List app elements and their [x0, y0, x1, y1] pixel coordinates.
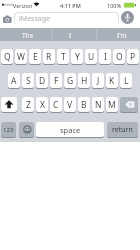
- button[interactable]: [14, 12, 119, 25]
- staticText: I: [69, 31, 72, 40]
- button[interactable]: X: [36, 97, 48, 112]
- staticText: E: [33, 51, 38, 63]
- staticText: I: [104, 51, 107, 63]
- button[interactable]: C: [50, 97, 62, 112]
- staticText: C: [53, 99, 59, 111]
- staticText: V: [67, 99, 73, 111]
- staticText: return: [112, 125, 133, 135]
- button[interactable]: Q: [1, 49, 13, 64]
- button[interactable]: A: [8, 73, 20, 88]
- staticText: Q: [4, 51, 11, 63]
- staticText: 123: [3, 126, 14, 134]
- staticText: R: [46, 51, 52, 63]
- staticText: O: [116, 51, 123, 63]
- button[interactable]: W: [15, 49, 27, 64]
- staticText: J: [97, 75, 100, 87]
- staticText: Z: [26, 99, 31, 111]
- staticText: T: [61, 51, 66, 63]
- staticText: K: [109, 75, 115, 87]
- button[interactable]: L: [120, 73, 132, 88]
- button[interactable]: E: [29, 49, 41, 64]
- button[interactable]: I: [47, 28, 93, 42]
- button[interactable]: U: [85, 49, 97, 64]
- button[interactable]: R: [43, 49, 55, 64]
- button[interactable]: H: [78, 73, 90, 88]
- button[interactable]: S: [22, 73, 34, 88]
- button[interactable]: [1, 97, 17, 112]
- button[interactable]: F: [50, 73, 62, 88]
- button[interactable]: P: [127, 49, 139, 64]
- staticText: B: [81, 99, 87, 111]
- staticText: The: [22, 31, 34, 40]
- staticText: Verizon: [13, 2, 33, 9]
- button[interactable]: [121, 11, 134, 24]
- button[interactable]: 123: [1, 122, 16, 137]
- staticText: A: [11, 75, 17, 87]
- staticText: 4:11 PM: [60, 2, 81, 9]
- button[interactable]: space: [36, 122, 104, 137]
- button[interactable]: [19, 122, 34, 137]
- button[interactable]: K: [106, 73, 118, 88]
- button[interactable]: The: [4, 28, 51, 42]
- button[interactable]: I: [99, 49, 111, 64]
- staticText: G: [67, 75, 74, 87]
- staticText: X: [40, 99, 45, 111]
- button[interactable]: V: [64, 97, 76, 112]
- staticText: L: [124, 75, 129, 87]
- staticText: I'm: [117, 31, 127, 40]
- button[interactable]: T: [57, 49, 69, 64]
- button[interactable]: [120, 97, 138, 112]
- button[interactable]: M: [106, 97, 118, 112]
- button[interactable]: Z: [22, 97, 34, 112]
- button[interactable]: return: [107, 122, 138, 137]
- staticText: S: [26, 75, 31, 87]
- staticText: Y: [75, 51, 80, 63]
- staticText: 100%: [107, 2, 122, 9]
- staticText: N: [95, 99, 102, 111]
- button[interactable]: I'm: [98, 28, 140, 42]
- button[interactable]: B: [78, 97, 90, 112]
- staticText: P: [130, 51, 136, 63]
- button[interactable]: O: [113, 49, 125, 64]
- staticText: W: [17, 51, 25, 63]
- button[interactable]: Y: [71, 49, 83, 64]
- staticText: F: [54, 75, 59, 87]
- staticText: iMessage: [19, 14, 50, 24]
- staticText: space: [60, 125, 81, 135]
- button[interactable]: J: [92, 73, 104, 88]
- staticText: D: [39, 75, 46, 87]
- staticText: U: [88, 51, 95, 63]
- button[interactable]: N: [92, 97, 104, 112]
- staticText: M: [108, 99, 116, 111]
- button[interactable]: G: [64, 73, 76, 88]
- button[interactable]: D: [36, 73, 48, 88]
- staticText: H: [81, 75, 88, 87]
